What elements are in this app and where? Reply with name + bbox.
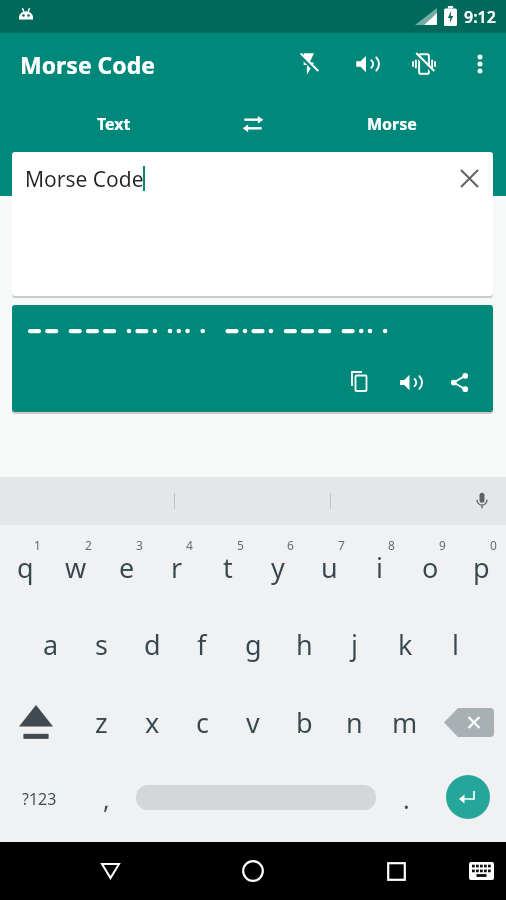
button[interactable]: d [127,617,177,671]
button[interactable]: j [329,617,379,671]
button[interactable] [439,362,479,402]
staticText: Morse Code [20,49,156,80]
button[interactable] [440,695,498,750]
staticText: n [346,704,363,741]
staticText: m [392,704,418,741]
button[interactable]: w [51,540,101,594]
staticText: d [144,626,161,663]
button[interactable] [284,40,332,88]
button[interactable] [339,362,379,402]
staticText: ?123 [22,788,57,810]
button[interactable]: q [0,540,50,594]
button[interactable]: v [228,695,278,749]
button[interactable] [8,695,63,750]
staticText: f [197,626,207,663]
staticText: Morse Code [25,165,144,194]
staticText: 9 [439,537,446,553]
staticText: i [376,549,383,586]
staticText: j [351,626,358,663]
button[interactable] [342,40,390,88]
button[interactable] [446,775,490,819]
button[interactable] [458,477,506,525]
button[interactable]: u [304,540,354,594]
staticText: Morse [367,113,417,135]
button[interactable] [389,362,429,402]
button[interactable]: p [456,540,506,594]
button[interactable] [366,842,426,900]
staticText: z [95,704,108,741]
staticText: g [245,626,262,663]
staticText: . [403,782,410,816]
button[interactable]: x [127,695,177,749]
button[interactable] [229,100,277,148]
staticText: 9:12 [464,6,496,28]
staticText: c [196,704,209,741]
staticText: b [296,704,313,741]
button[interactable] [458,40,502,88]
button[interactable]: . [384,775,428,823]
staticText: 6 [287,537,294,553]
button[interactable]: i [354,540,404,594]
staticText: s [95,626,108,663]
button[interactable]: b [279,695,329,749]
staticText: a [43,626,59,663]
button[interactable]: y [253,540,303,594]
button[interactable]: r [152,540,202,594]
button[interactable] [136,785,376,810]
staticText: o [422,549,439,586]
staticText: , [103,782,110,816]
staticText: 2 [85,537,92,553]
staticText: 7 [338,537,345,553]
button[interactable]: e [102,540,152,594]
button[interactable]: c [177,695,227,749]
button[interactable]: s [76,617,126,671]
button[interactable]: f [177,617,227,671]
button[interactable] [400,40,448,88]
staticText: 0 [490,537,497,553]
button[interactable]: l [430,617,480,671]
button[interactable]: o [405,540,455,594]
button[interactable]: t [203,540,253,594]
button[interactable]: Morse [352,99,432,149]
button[interactable]: ?123 [10,775,68,823]
button[interactable]: , [84,775,128,823]
button[interactable]: a [26,617,76,671]
button[interactable]: z [76,695,126,749]
staticText: 4 [186,537,193,553]
staticText: l [452,626,459,663]
button[interactable] [80,842,140,900]
button[interactable]: Text [74,99,154,149]
staticText: x [145,704,160,741]
staticText: 8 [388,537,395,553]
staticText: u [321,549,338,586]
button[interactable]: m [380,695,430,749]
staticText: q [17,549,34,586]
staticText: 5 [237,537,244,553]
staticText: 1 [34,537,41,553]
button[interactable]: g [228,617,278,671]
staticText: p [473,549,490,586]
button[interactable] [223,842,283,900]
button[interactable]: n [329,695,379,749]
button[interactable] [458,848,504,894]
staticText: r [171,549,183,586]
button[interactable] [449,158,489,198]
staticText: Text [97,113,131,135]
staticText: h [296,626,313,663]
staticText: k [398,626,413,663]
button[interactable]: h [279,617,329,671]
button[interactable]: k [380,617,430,671]
staticText: 3 [136,537,143,553]
staticText: y [271,549,285,586]
staticText: v [246,704,260,741]
staticText: t [223,549,233,586]
staticText: e [119,549,135,586]
staticText: w [65,549,87,586]
